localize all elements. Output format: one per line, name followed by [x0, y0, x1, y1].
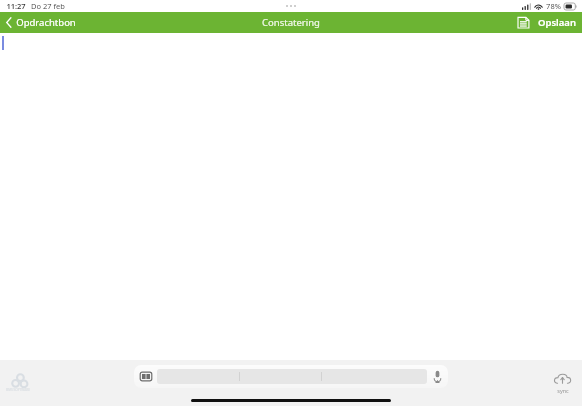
- other: Sync: [553, 372, 572, 386]
- staticText: BMS SOFTWARE: [6, 388, 30, 392]
- other: Keyboard layout: [139, 371, 153, 382]
- other: Dictation: [432, 370, 443, 383]
- staticText: Opdrachtbon: [16, 16, 76, 29]
- staticText: Do 27 feb: [31, 1, 65, 11]
- button[interactable]: Document: [510, 12, 582, 33]
- button[interactable]: [0, 33, 582, 406]
- staticText: Opslaan: [538, 16, 576, 29]
- button[interactable]: Keyboard layout: [134, 365, 448, 388]
- button[interactable]: Opdrachtbon: [0, 12, 84, 33]
- button[interactable]: Sync: [553, 372, 572, 394]
- staticText: 78%: [546, 1, 561, 11]
- staticText: 11:27: [6, 1, 26, 11]
- other: Document: [518, 16, 532, 29]
- staticText: Constatering: [262, 16, 320, 29]
- staticText: sync: [557, 387, 569, 394]
